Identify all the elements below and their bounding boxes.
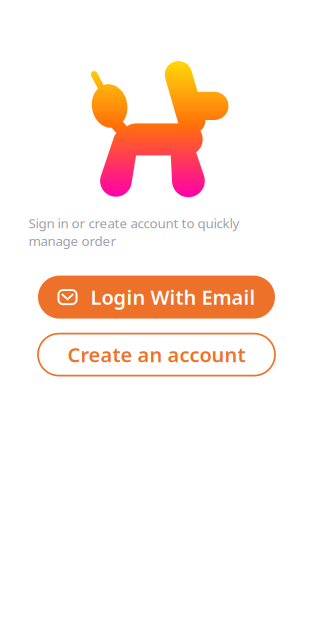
staticText: Login With Email <box>90 284 255 310</box>
staticText: Sign in or create account to quickly man… <box>28 214 239 250</box>
staticText: Create an account <box>67 341 245 368</box>
button[interactable]: Login With Email <box>38 276 275 319</box>
button[interactable]: Create an account <box>38 334 275 376</box>
